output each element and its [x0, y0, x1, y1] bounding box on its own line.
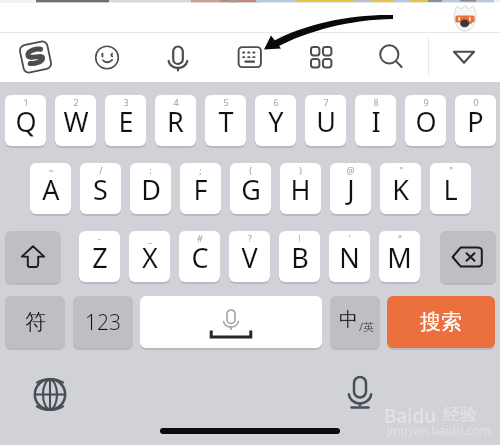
button[interactable]: E	[105, 95, 146, 146]
button[interactable]: Search	[387, 296, 495, 348]
staticText: jingyan.baidu.com	[387, 422, 491, 438]
staticText: @	[346, 164, 355, 176]
button[interactable]: Search	[371, 39, 407, 75]
staticText: T	[218, 103, 234, 140]
button[interactable]: Switch language	[32, 376, 68, 413]
staticText: ~	[48, 164, 54, 176]
staticText: '	[348, 232, 351, 244]
staticText: 搜索	[420, 309, 462, 335]
staticText: M	[387, 239, 412, 276]
button[interactable]: Keyboard layout	[231, 39, 267, 75]
button[interactable]: X	[129, 231, 170, 282]
staticText: 5	[223, 96, 229, 108]
button[interactable]: Collapse keyboard	[446, 39, 482, 75]
staticText: ;	[199, 164, 202, 176]
button[interactable]: Voice	[342, 375, 378, 411]
button[interactable]: Space	[140, 296, 322, 348]
button[interactable]: V	[229, 231, 270, 282]
staticText: S	[93, 171, 108, 208]
button[interactable]: S	[80, 163, 121, 214]
button[interactable]: F	[180, 163, 221, 214]
button[interactable]: I	[355, 95, 396, 146]
staticText: 符	[25, 309, 46, 335]
staticText: N	[339, 239, 360, 276]
staticText: K	[392, 171, 409, 208]
button[interactable]: G	[230, 163, 271, 214]
button[interactable]: Profile	[453, 5, 477, 31]
staticText: !	[298, 232, 301, 244]
staticText: 经验	[443, 404, 477, 425]
button[interactable]: Z	[79, 231, 120, 282]
button[interactable]: J	[330, 163, 371, 214]
staticText: L	[443, 171, 458, 208]
button[interactable]: C	[179, 231, 220, 282]
button[interactable]: Apps	[302, 39, 338, 75]
staticText: )	[299, 164, 302, 176]
staticText: 3	[123, 96, 129, 108]
button[interactable]: O	[405, 95, 446, 146]
button[interactable]: H	[280, 163, 321, 214]
button[interactable]: Symbols	[5, 296, 65, 348]
button[interactable]: Shift	[5, 231, 61, 283]
staticText: E	[118, 103, 134, 140]
staticText: U	[316, 103, 336, 140]
button[interactable]: T	[205, 95, 246, 146]
staticText: 2	[73, 96, 79, 108]
button[interactable]: A	[30, 163, 71, 214]
button[interactable]: M	[379, 231, 420, 282]
button[interactable]: R	[155, 95, 196, 146]
staticText: O	[415, 103, 437, 140]
button[interactable]: Emoji	[89, 39, 125, 75]
staticText: H	[290, 171, 311, 208]
button[interactable]: B	[279, 231, 320, 282]
staticText: A	[42, 171, 60, 208]
staticText: R	[167, 103, 184, 140]
staticText: :	[149, 164, 152, 176]
staticText: J	[347, 171, 355, 208]
button[interactable]: K	[380, 163, 421, 214]
button[interactable]: L	[430, 163, 471, 214]
staticText: B	[291, 239, 309, 276]
staticText: °	[398, 232, 402, 244]
button[interactable]: Sogou	[18, 39, 54, 75]
staticText: 6	[273, 96, 279, 108]
staticText: F	[193, 171, 208, 208]
staticText: 0	[473, 96, 479, 108]
staticText: ?	[248, 232, 252, 244]
staticText: D	[141, 171, 161, 208]
staticText: 7	[323, 96, 329, 108]
button[interactable]: N	[329, 231, 370, 282]
button[interactable]: Voice input	[160, 39, 196, 75]
staticText: -	[98, 232, 101, 244]
button[interactable]: D	[130, 163, 171, 214]
staticText: 1	[23, 96, 29, 108]
staticText: Y	[268, 103, 284, 140]
button[interactable]: Q	[5, 95, 46, 146]
button[interactable]: Y	[255, 95, 296, 146]
staticText: 8	[373, 96, 379, 108]
staticText: P	[467, 103, 484, 140]
staticText: I	[371, 103, 381, 140]
staticText: 4	[173, 96, 179, 108]
button[interactable]: Numbers	[73, 296, 133, 348]
button[interactable]: W	[55, 95, 96, 146]
button[interactable]: Chinese English toggle	[330, 296, 380, 348]
staticText: G	[241, 171, 261, 208]
staticText: 123	[85, 308, 121, 337]
button[interactable]: U	[305, 95, 346, 146]
staticText: 中	[339, 308, 358, 332]
staticText: (	[249, 164, 252, 176]
staticText: "	[449, 164, 453, 176]
staticText: 9	[423, 96, 429, 108]
staticText: W	[63, 103, 89, 140]
button[interactable]: P	[455, 95, 496, 146]
staticText: X	[142, 239, 158, 276]
staticText: Z	[92, 239, 108, 276]
staticText: /英	[359, 319, 375, 334]
staticText: V	[241, 239, 258, 276]
staticText: _	[148, 232, 152, 244]
button[interactable]: Backspace	[440, 231, 496, 283]
staticText: Q	[15, 103, 37, 140]
staticText: C	[191, 239, 209, 276]
staticText: "	[399, 164, 403, 176]
